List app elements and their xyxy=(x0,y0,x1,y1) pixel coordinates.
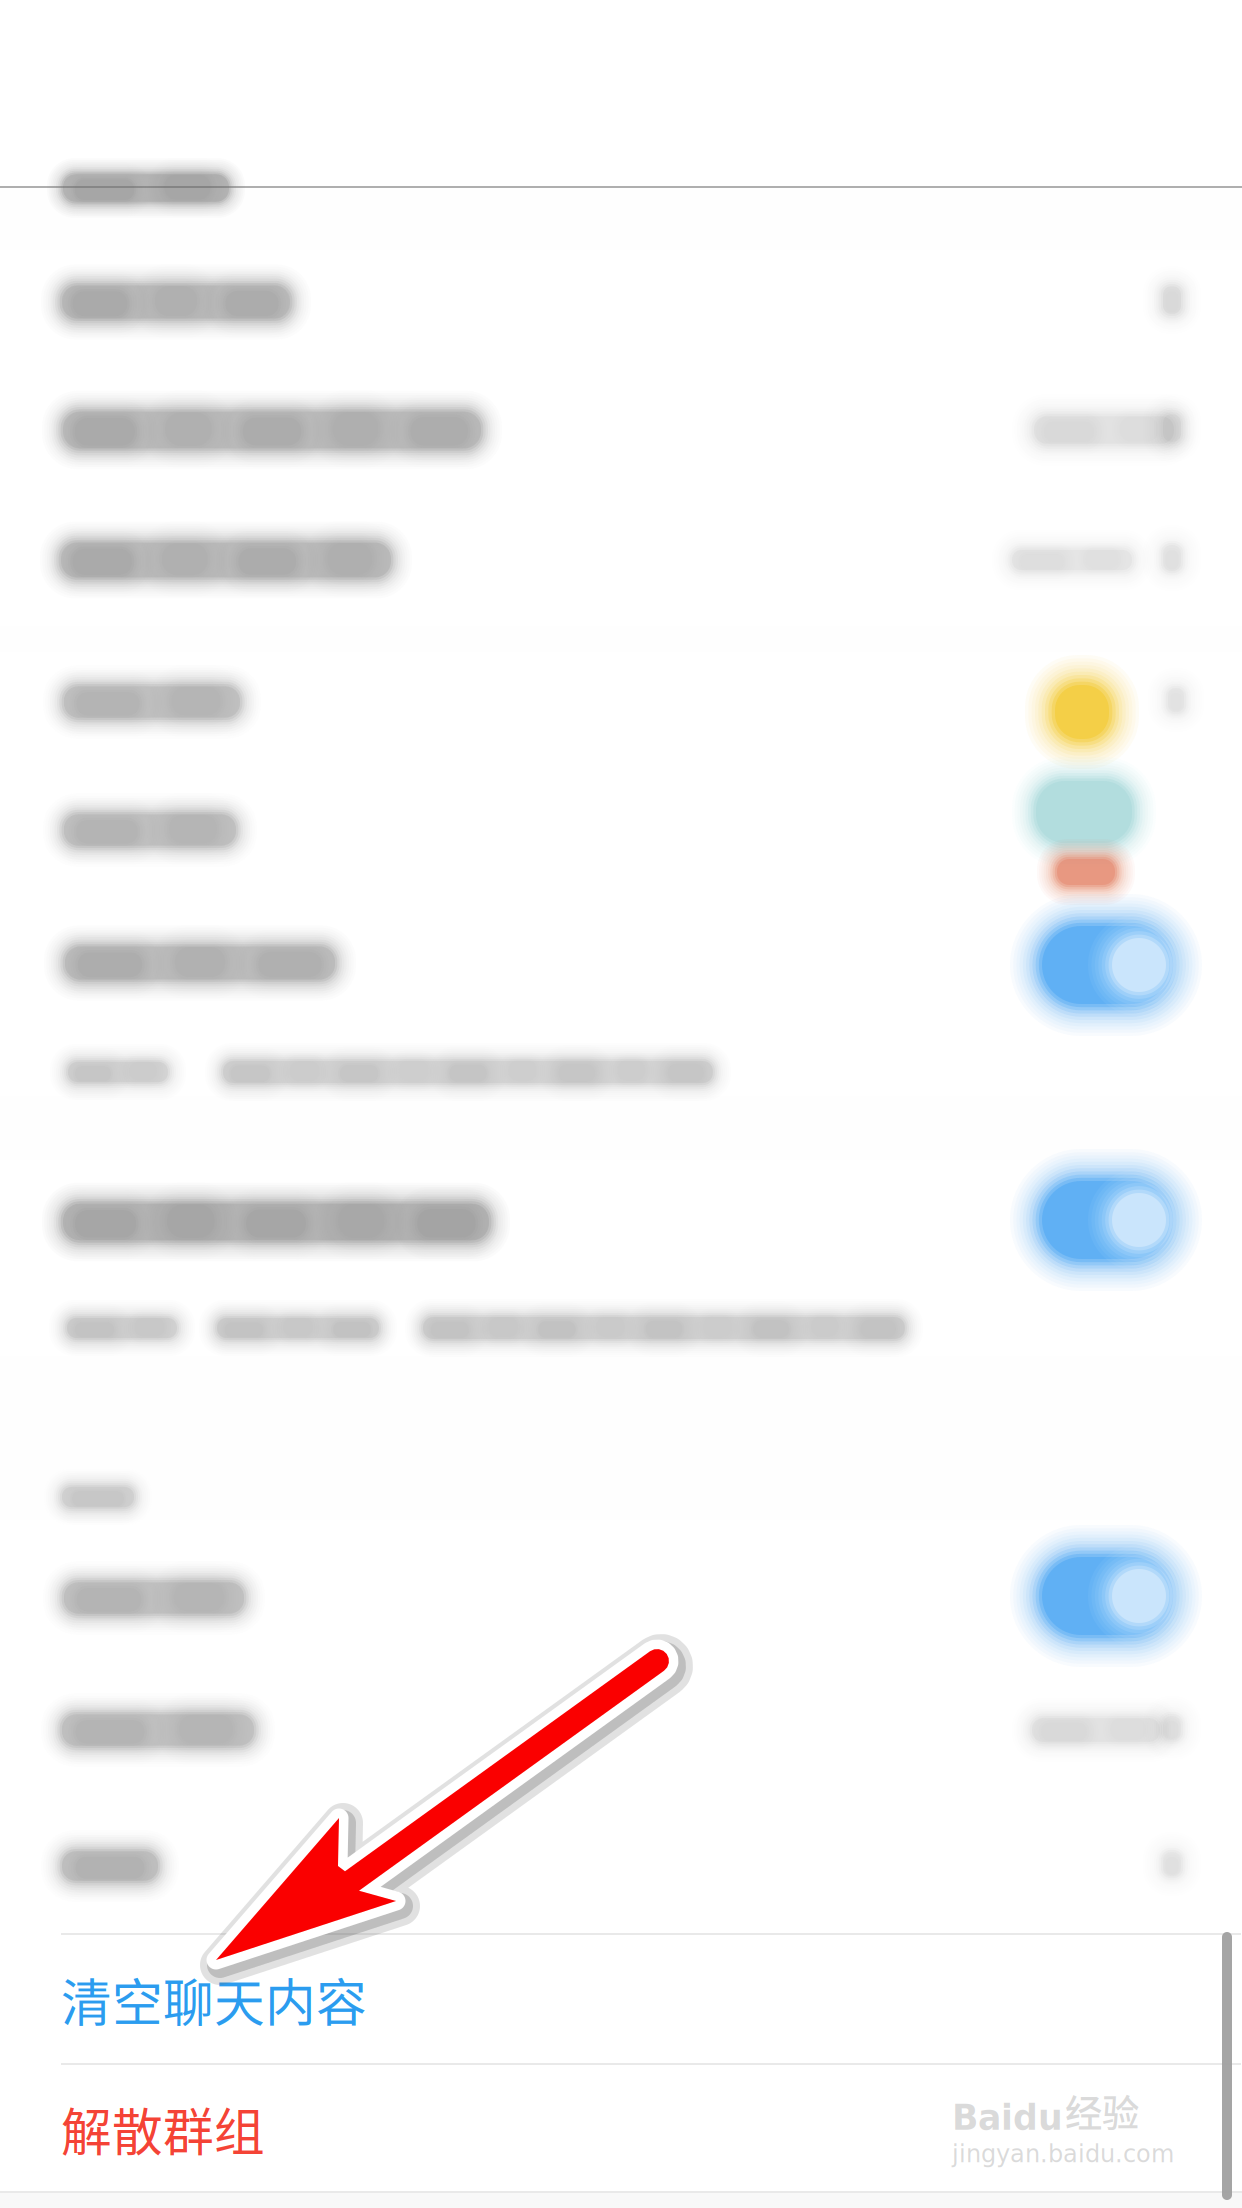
staticText: 群聊消息 xyxy=(62,119,314,209)
staticText: jingyan.baidu.com xyxy=(952,2140,1174,2168)
staticText: 清空聊天内容 xyxy=(61,1963,367,2036)
staticText: 经验 xyxy=(1065,2084,1139,2138)
button[interactable]: Back xyxy=(0,74,121,186)
button[interactable]: 清空聊天内容 xyxy=(0,1935,1242,2064)
staticText: Baidu xyxy=(952,2098,1063,2138)
staticText: 解散群组 xyxy=(61,2092,265,2166)
button[interactable]: 解散群组 xyxy=(0,2065,1242,2193)
